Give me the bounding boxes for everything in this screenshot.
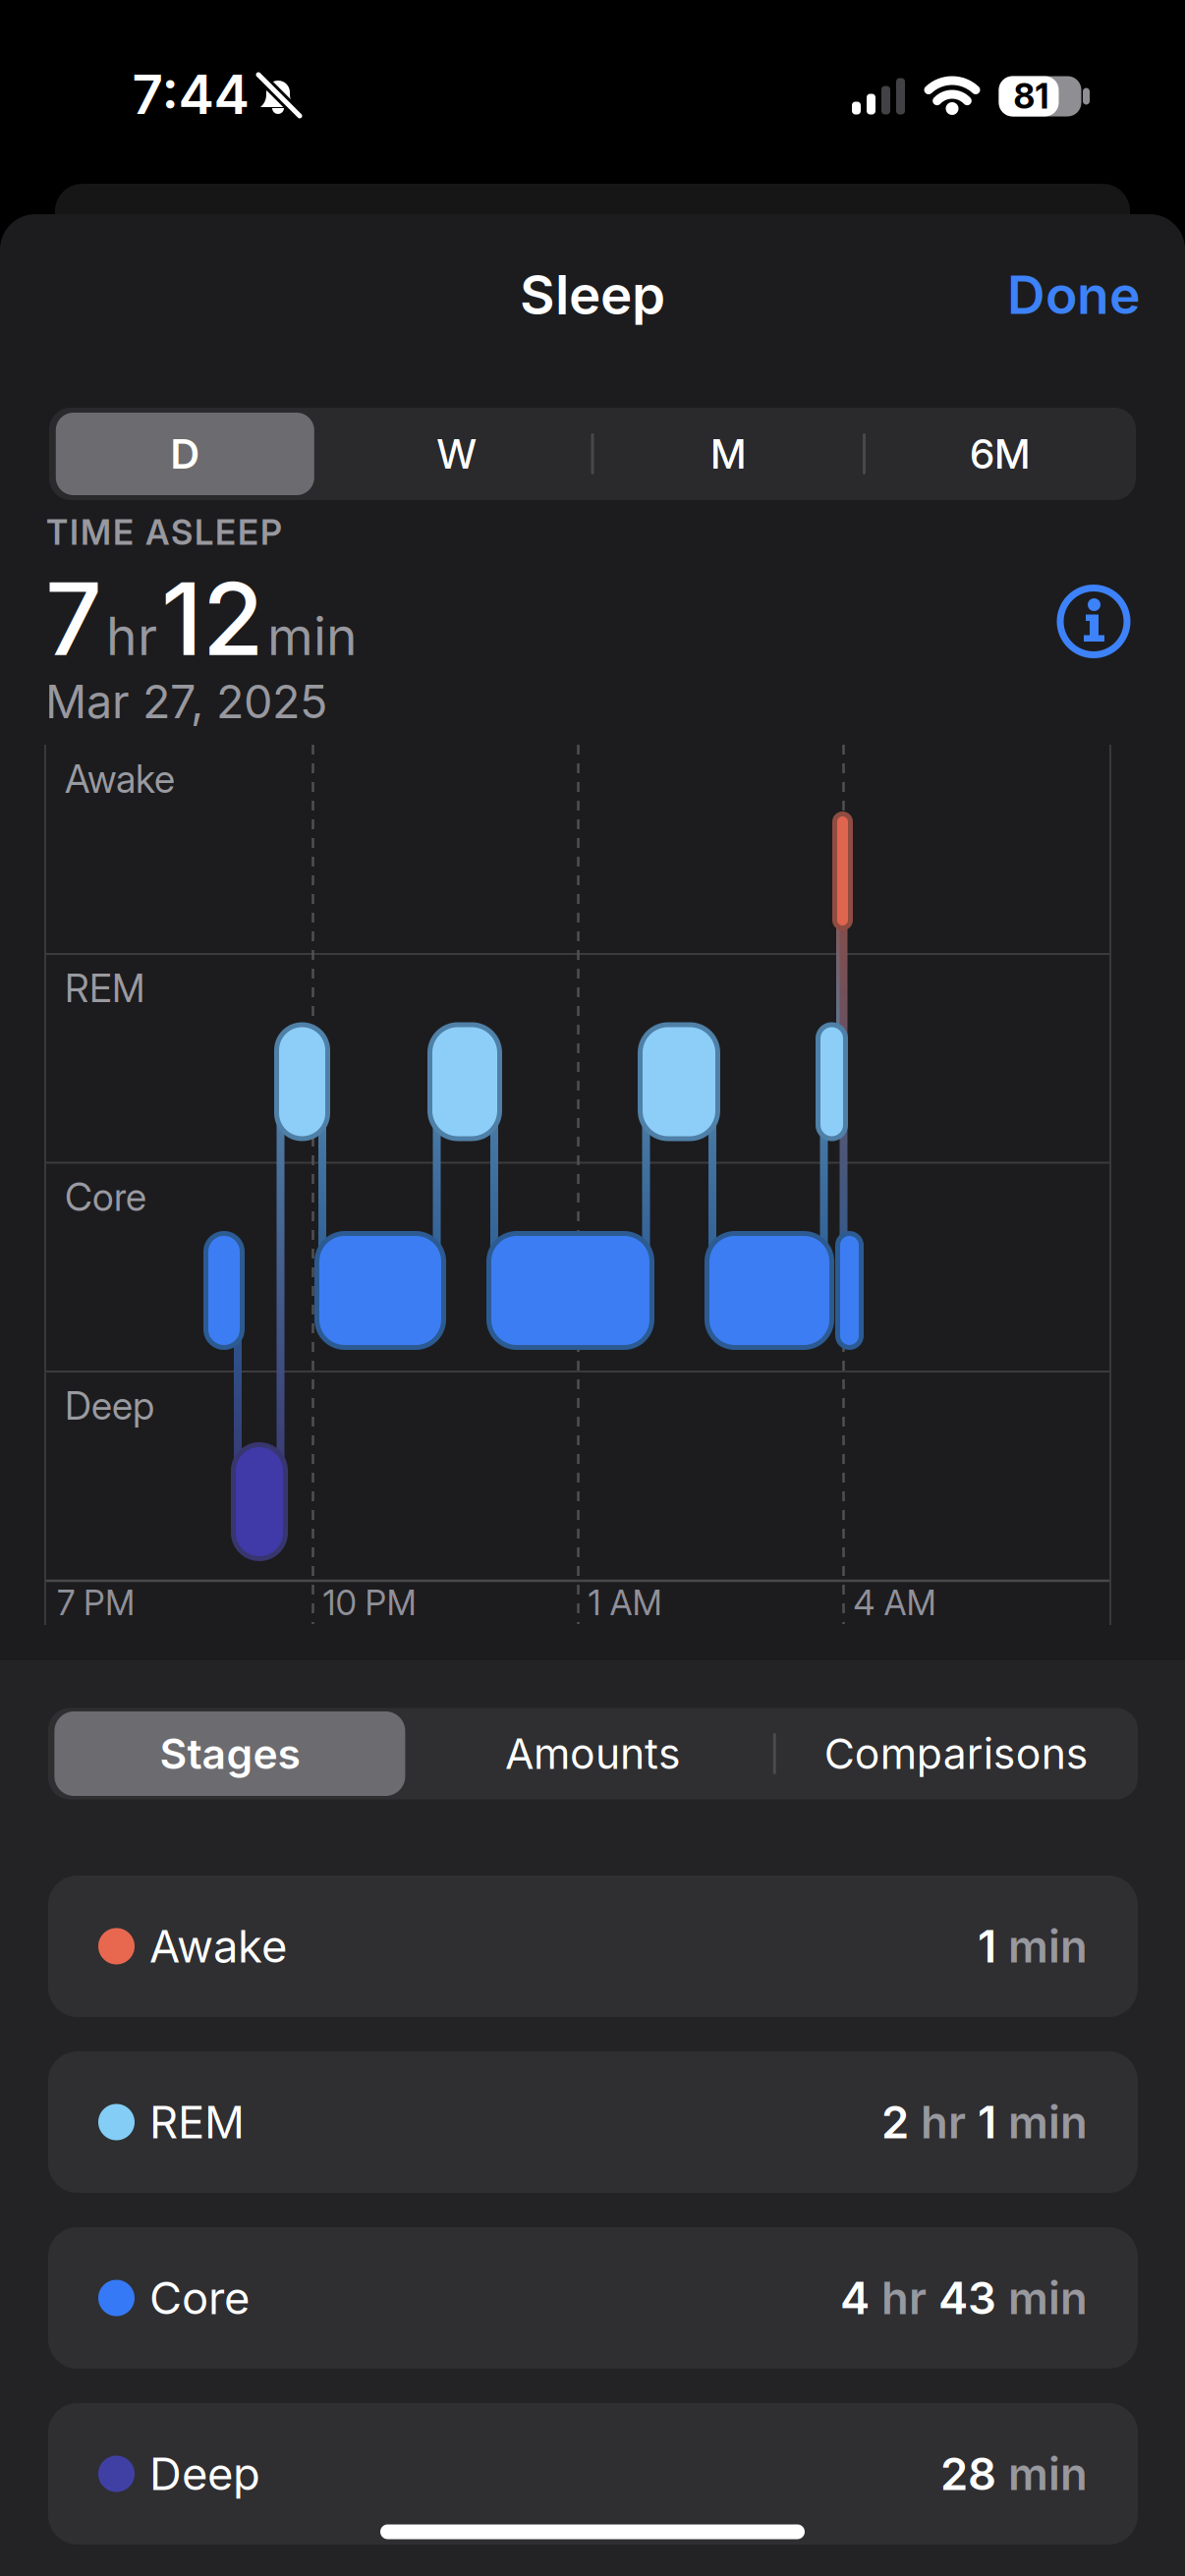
staticText: min — [1008, 2448, 1088, 2500]
staticText: M — [711, 430, 746, 478]
button[interactable]: W — [321, 408, 592, 500]
staticText: Stages — [160, 1729, 300, 1778]
staticText: W — [437, 430, 476, 478]
staticText: 6M — [970, 430, 1030, 478]
button[interactable]: Stages — [49, 1708, 411, 1799]
button[interactable]: Done — [1007, 264, 1141, 326]
staticText: Deep — [65, 1383, 154, 1428]
staticText: 7:44 — [132, 63, 249, 126]
button[interactable]: Comparisons — [775, 1708, 1138, 1799]
button[interactable]: D — [49, 408, 321, 500]
staticText: Amounts — [505, 1729, 681, 1778]
staticText: Core — [65, 1175, 146, 1220]
staticText: 1 — [978, 2096, 996, 2148]
staticText: 4 — [840, 2272, 870, 2324]
button[interactable]: REM — [48, 2051, 1138, 2193]
staticText: Awake — [149, 1920, 287, 1973]
staticText: 28 — [940, 2448, 996, 2500]
button[interactable] — [1056, 584, 1131, 659]
staticText: Sleep — [520, 263, 665, 326]
staticText: 1 AM — [588, 1583, 662, 1623]
button[interactable]: Awake — [48, 1876, 1138, 2017]
staticText: Done — [1007, 264, 1141, 326]
staticText: REM — [65, 966, 144, 1011]
staticText: 1 — [978, 1920, 996, 1973]
staticText: 4 AM — [853, 1583, 936, 1623]
button[interactable]: 6M — [864, 408, 1136, 500]
button[interactable]: Core — [48, 2227, 1138, 2369]
button[interactable]: M — [593, 408, 864, 500]
staticText: hr — [106, 605, 157, 667]
staticText: 81 — [1014, 76, 1049, 116]
staticText: REM — [149, 2096, 245, 2148]
staticText: 2 — [881, 2096, 909, 2148]
staticText: min — [1008, 2096, 1088, 2148]
staticText: Comparisons — [824, 1729, 1088, 1778]
staticText: 12 — [161, 560, 263, 678]
button[interactable]: Amounts — [412, 1708, 774, 1799]
staticText: Awake — [65, 757, 175, 801]
staticText: Core — [149, 2272, 250, 2324]
staticText: TIME ASLEEP — [46, 512, 282, 553]
staticText: min — [1008, 1920, 1088, 1973]
staticText: min — [267, 605, 358, 667]
staticText: D — [171, 430, 199, 478]
staticText: Mar 27, 2025 — [45, 674, 327, 729]
staticText: hr — [881, 2272, 927, 2324]
button[interactable]: Deep — [48, 2403, 1138, 2545]
staticText: 10 PM — [323, 1583, 416, 1623]
staticText: 7 — [45, 560, 102, 678]
staticText: min — [1008, 2272, 1088, 2324]
staticText: hr — [921, 2096, 966, 2148]
staticText: Deep — [149, 2448, 260, 2500]
staticText: 43 — [938, 2272, 996, 2324]
staticText: 7 PM — [57, 1583, 135, 1623]
